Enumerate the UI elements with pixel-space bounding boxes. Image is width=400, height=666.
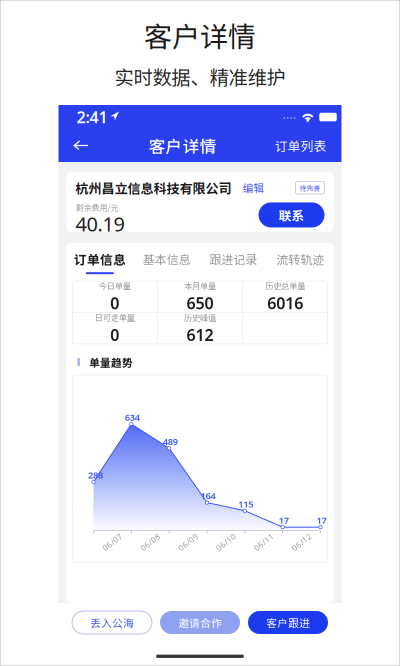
staticText: 订单列表 <box>274 136 326 155</box>
staticText: 06/10 <box>214 537 237 547</box>
staticText: 06/09 <box>177 537 200 547</box>
staticText: 丢入公海 <box>90 615 134 630</box>
button[interactable]: 邀请合作 <box>160 611 240 634</box>
staticText: 489 <box>163 435 178 447</box>
button[interactable]: 丢入公海 <box>72 611 152 634</box>
staticText: 单量趋势 <box>89 354 133 370</box>
button[interactable]: 订单信息 <box>66 241 133 278</box>
staticText: 订单信息 <box>74 250 126 268</box>
staticText: 650 <box>186 292 213 314</box>
button[interactable]: 联系 <box>258 202 324 227</box>
staticText: 115 <box>238 498 253 510</box>
button[interactable]: 返回 <box>68 133 93 157</box>
staticText: 历史总单量 <box>265 279 305 291</box>
staticText: 客户跟进 <box>266 615 310 630</box>
staticText: 40.19 <box>75 210 124 237</box>
staticText: 联系 <box>278 206 304 224</box>
staticText: 基本信息 <box>143 250 191 268</box>
staticText: 17 <box>279 514 289 526</box>
staticText: 本月单量 <box>184 279 216 291</box>
staticText: 06/11 <box>252 537 275 547</box>
staticText: 实时数据、精准维护 <box>114 62 285 90</box>
button[interactable]: 基本信息 <box>133 241 200 278</box>
staticText: 跟进记录 <box>209 250 257 268</box>
staticText: 历史峰值 <box>184 311 216 323</box>
button[interactable]: 客户跟进 <box>248 611 328 634</box>
staticText: 0 <box>110 324 119 345</box>
staticText: 待完善 <box>299 183 320 193</box>
staticText: 06/08 <box>139 537 162 547</box>
staticText: 客户详情 <box>148 133 216 157</box>
staticText: 06/12 <box>290 537 313 547</box>
staticText: 288 <box>88 469 103 481</box>
staticText: 164 <box>200 489 215 502</box>
staticText: 编辑 <box>242 180 264 195</box>
staticText: 杭州昌立信息科技有限公司 <box>75 178 231 197</box>
staticText: 2:41 <box>76 106 107 128</box>
staticText: 日可走单量 <box>95 311 135 323</box>
staticText: 612 <box>186 324 213 345</box>
staticText: 剩余费用/元 <box>75 201 118 213</box>
button[interactable]: 跟进记录 <box>200 241 267 278</box>
button[interactable]: 编辑 <box>231 177 268 198</box>
staticText: 今日单量 <box>99 279 131 291</box>
button[interactable]: 流转轨迹 <box>267 241 334 278</box>
staticText: 0 <box>110 292 119 314</box>
staticText: 客户详情 <box>144 15 256 55</box>
staticText: 17 <box>316 514 326 526</box>
staticText: 流转轨迹 <box>276 250 324 268</box>
staticText: 6016 <box>267 292 303 314</box>
staticText: 邀请合作 <box>178 615 222 630</box>
staticText: 634 <box>125 411 140 423</box>
button[interactable]: 订单列表 <box>271 130 329 161</box>
staticText: 06/07 <box>101 537 124 547</box>
